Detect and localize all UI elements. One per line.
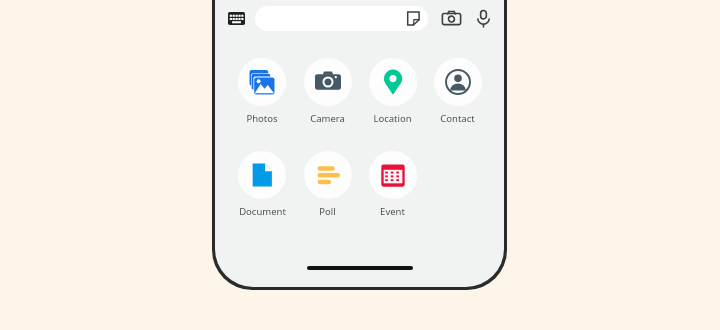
button[interactable]: Voice input: [470, 5, 496, 31]
button[interactable]: Camera: [438, 5, 464, 31]
button[interactable]: Event: [360, 149, 425, 220]
button[interactable]: Document: [229, 149, 295, 220]
staticText: Contact: [440, 112, 475, 125]
staticText: Camera: [310, 112, 345, 125]
button[interactable]: Contact: [425, 56, 490, 127]
button[interactable]: [255, 6, 428, 31]
staticText: Event: [380, 205, 405, 218]
staticText: Document: [239, 205, 286, 218]
button[interactable]: Poll: [295, 149, 360, 220]
button[interactable]: Camera: [295, 56, 360, 127]
button[interactable]: Keyboard: [223, 5, 249, 31]
staticText: Photos: [246, 112, 278, 125]
button[interactable]: Photos: [229, 56, 295, 127]
button[interactable]: Location: [360, 56, 425, 127]
staticText: Poll: [319, 205, 336, 218]
staticText: Location: [373, 112, 412, 125]
